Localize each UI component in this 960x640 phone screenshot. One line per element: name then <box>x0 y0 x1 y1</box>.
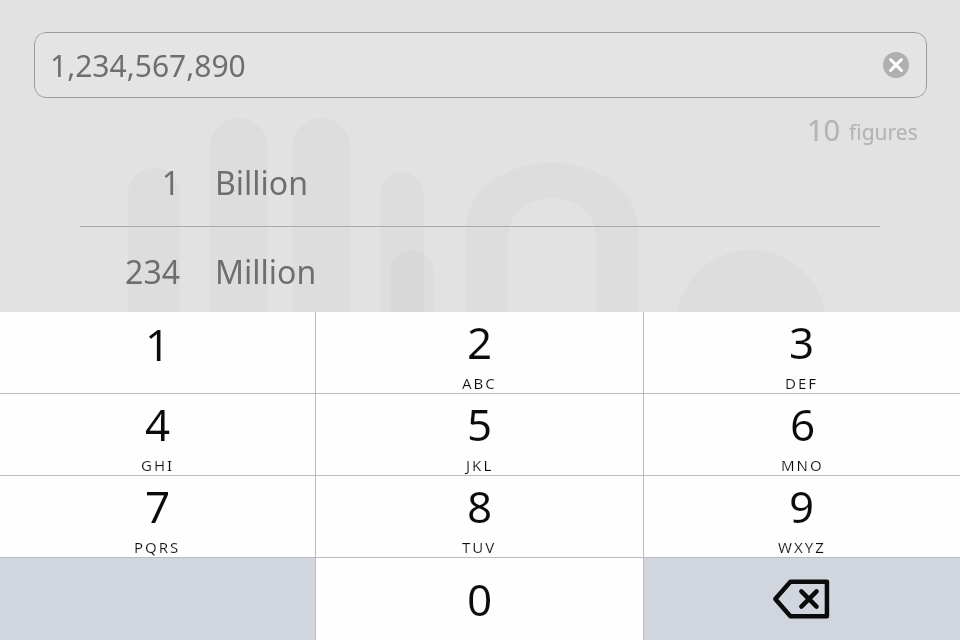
staticText: 4 <box>145 394 171 454</box>
button[interactable]: 1,234,567,890 <box>34 32 927 98</box>
button[interactable]: 7 <box>0 476 315 557</box>
button[interactable]: 1 <box>0 312 315 393</box>
staticText: JKL <box>466 455 494 475</box>
staticText: 7 <box>145 476 171 536</box>
staticText: 5 <box>467 394 493 454</box>
staticText: PQRS <box>134 537 181 557</box>
staticText: 0 <box>467 569 493 629</box>
staticText: 10 <box>807 110 841 149</box>
button[interactable]: Clear text <box>881 50 911 80</box>
button[interactable]: 5 <box>316 394 643 475</box>
staticText: 1,234,567,890 <box>50 45 246 86</box>
staticText: GHI <box>141 455 175 475</box>
staticText: 234 <box>125 250 180 294</box>
staticText: MNO <box>781 455 824 475</box>
staticText: figures <box>849 118 918 147</box>
staticText: 3 <box>789 312 815 372</box>
button[interactable]: 2 <box>316 312 643 393</box>
staticText: Million <box>215 250 317 294</box>
staticText: WXYZ <box>778 537 826 557</box>
button[interactable]: 1 <box>0 155 960 211</box>
button[interactable]: 6 <box>644 394 960 475</box>
staticText: DEF <box>785 373 819 393</box>
button[interactable]: 8 <box>316 476 643 557</box>
button[interactable]: Backspace <box>644 558 960 640</box>
button[interactable]: 4 <box>0 394 315 475</box>
staticText: 1 <box>161 161 180 205</box>
staticText: 8 <box>467 476 493 536</box>
staticText: 2 <box>467 312 493 372</box>
button[interactable]: 0 <box>316 558 643 640</box>
staticText: 1 <box>145 314 171 374</box>
staticText: Billion <box>215 161 308 205</box>
button[interactable]: 3 <box>644 312 960 393</box>
button[interactable]: 234 <box>0 244 960 300</box>
button[interactable]: 9 <box>644 476 960 557</box>
staticText: 9 <box>789 476 815 536</box>
staticText: ABC <box>462 373 497 393</box>
staticText: TUV <box>462 537 497 557</box>
staticText: 6 <box>790 394 816 454</box>
